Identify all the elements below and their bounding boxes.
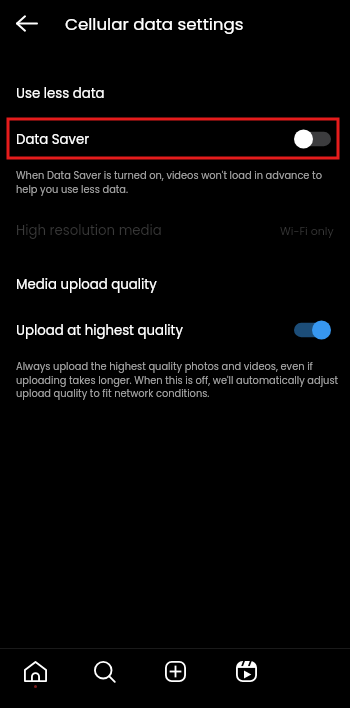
staticText: Use less data (16, 84, 105, 103)
button[interactable] (294, 319, 331, 341)
button[interactable]: High resolution media (16, 215, 334, 245)
button[interactable]: Home (11, 649, 59, 705)
staticText: Upload at highest quality (16, 321, 183, 340)
button[interactable]: Data Saver (0, 118, 350, 160)
staticText: High resolution media (16, 221, 280, 240)
button[interactable] (294, 128, 331, 150)
button[interactable]: Create (151, 649, 199, 705)
staticText: Always upload the highest quality photos… (16, 360, 346, 400)
button[interactable]: Reels (222, 649, 270, 705)
button[interactable]: Search (81, 649, 129, 705)
button[interactable]: Upload at highest quality (0, 315, 350, 345)
staticText: Cellular data settings (65, 12, 244, 35)
staticText: Data Saver (16, 130, 90, 149)
staticText: When Data Saver is turned on, videos won… (16, 169, 330, 196)
button[interactable]: Back (5, 1, 49, 45)
staticText: Media upload quality (16, 275, 157, 294)
staticText: Wi-Fi only (280, 223, 334, 238)
